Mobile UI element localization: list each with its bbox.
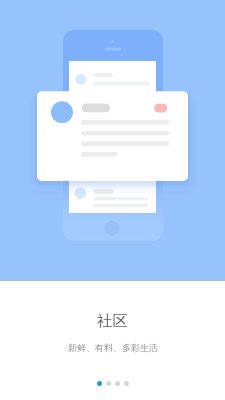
- button[interactable]: Page 4: [124, 381, 129, 386]
- button[interactable]: Page 2: [106, 381, 111, 386]
- staticText: 社区: [97, 311, 128, 330]
- staticText: 新鲜、有料、多彩生活: [68, 342, 158, 353]
- button[interactable]: Page 1: [97, 381, 102, 386]
- button[interactable]: Page 3: [115, 381, 120, 386]
